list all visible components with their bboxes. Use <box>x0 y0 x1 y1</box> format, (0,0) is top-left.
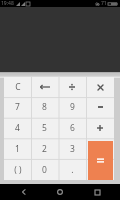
staticText: C <box>15 81 21 93</box>
button[interactable]: 1 <box>4 138 31 159</box>
staticText: 7 <box>15 101 20 113</box>
button[interactable]: C <box>4 77 31 97</box>
button[interactable]: 8 <box>31 97 58 117</box>
button[interactable]: Recent apps <box>84 184 110 200</box>
staticText: 6 <box>70 122 75 134</box>
button[interactable]: Multiply <box>86 77 114 97</box>
staticText: 1 <box>15 143 20 155</box>
staticText: 71 <box>101 0 107 7</box>
button[interactable]: Home <box>47 184 73 200</box>
button[interactable]: 0 <box>31 159 58 180</box>
button[interactable]: Minus <box>86 97 114 117</box>
button[interactable]: 5 <box>31 117 58 138</box>
staticText: 8 <box>42 101 47 113</box>
button[interactable]: 2 <box>31 138 58 159</box>
button[interactable]: . <box>58 159 86 180</box>
staticText: ( ) <box>14 164 22 176</box>
button[interactable]: Equals <box>88 141 113 180</box>
button[interactable]: Back <box>11 184 37 200</box>
staticText: 5 <box>42 122 47 134</box>
staticText: 0 <box>42 164 47 176</box>
staticText: 4 <box>15 122 20 134</box>
button[interactable]: Plus <box>86 117 114 138</box>
staticText: 9 <box>70 101 75 113</box>
button[interactable]: ( ) <box>4 159 31 180</box>
staticText: 3 <box>70 143 75 155</box>
button[interactable]: 6 <box>58 117 86 138</box>
staticText: 19:48 <box>1 0 14 7</box>
button[interactable]: 4 <box>4 117 31 138</box>
staticText: 2 <box>42 143 47 155</box>
button[interactable]: 7 <box>4 97 31 117</box>
staticText: . <box>71 164 74 176</box>
button[interactable]: 9 <box>58 97 86 117</box>
button[interactable]: Backspace <box>31 77 58 97</box>
button[interactable]: Divide <box>58 77 86 97</box>
button[interactable]: 3 <box>58 138 86 159</box>
